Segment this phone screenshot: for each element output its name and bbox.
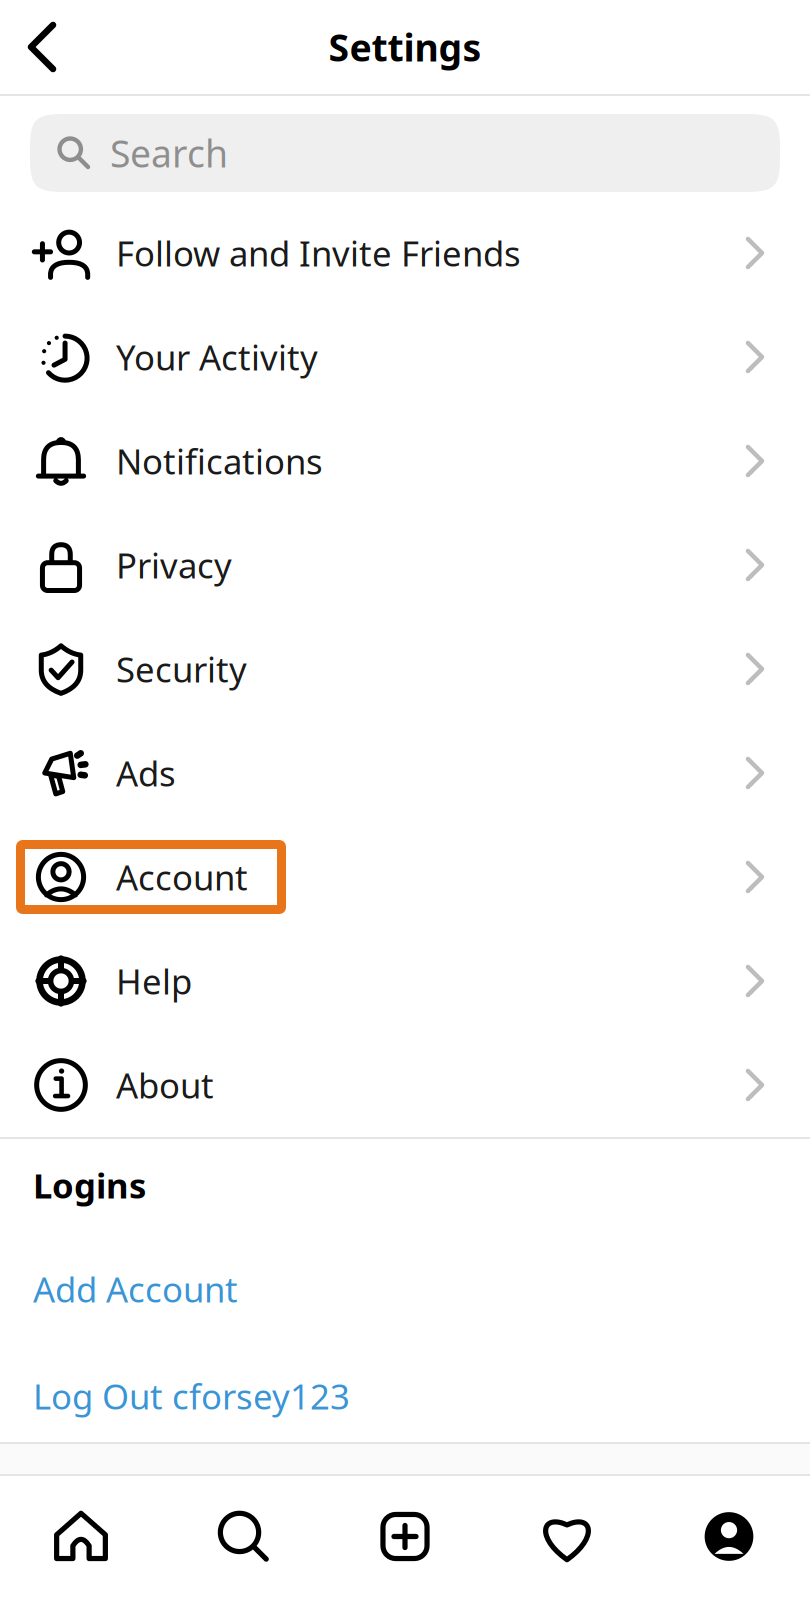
button[interactable]: Security <box>0 617 810 721</box>
button[interactable]: Ads <box>0 721 810 825</box>
staticText: Your Activity <box>116 334 318 380</box>
staticText: Account <box>116 854 248 900</box>
button[interactable]: Search <box>0 96 810 201</box>
button[interactable]: Your Activity <box>0 305 810 409</box>
staticText: Logins <box>33 1162 146 1208</box>
button[interactable]: About <box>0 1033 810 1137</box>
staticText: Follow and Invite Friends <box>116 230 521 276</box>
button[interactable]: Help <box>0 929 810 1033</box>
button[interactable]: Notifications <box>0 409 810 513</box>
button[interactable]: Back <box>0 4 80 90</box>
button[interactable]: Activity <box>486 1476 648 1597</box>
button[interactable]: New Post <box>324 1476 486 1597</box>
button[interactable]: Account <box>0 825 810 929</box>
staticText: Ads <box>116 750 176 796</box>
button[interactable]: Follow and Invite Friends <box>0 201 810 305</box>
staticText: Settings <box>328 22 481 72</box>
button[interactable]: Search <box>162 1476 324 1597</box>
button[interactable]: Add Account <box>0 1208 238 1312</box>
staticText: About <box>116 1062 214 1108</box>
button[interactable]: Profile <box>648 1476 810 1597</box>
staticText: Search <box>110 128 228 178</box>
staticText: Add Account <box>33 1266 238 1312</box>
staticText: Help <box>116 958 192 1004</box>
staticText: Security <box>116 646 247 692</box>
button[interactable]: Log Out cforsey123 <box>0 1312 350 1419</box>
staticText: Notifications <box>116 438 323 484</box>
button[interactable]: Privacy <box>0 513 810 617</box>
staticText: Privacy <box>116 542 232 588</box>
button[interactable]: Home <box>0 1476 162 1597</box>
staticText: Log Out cforsey123 <box>33 1373 350 1419</box>
